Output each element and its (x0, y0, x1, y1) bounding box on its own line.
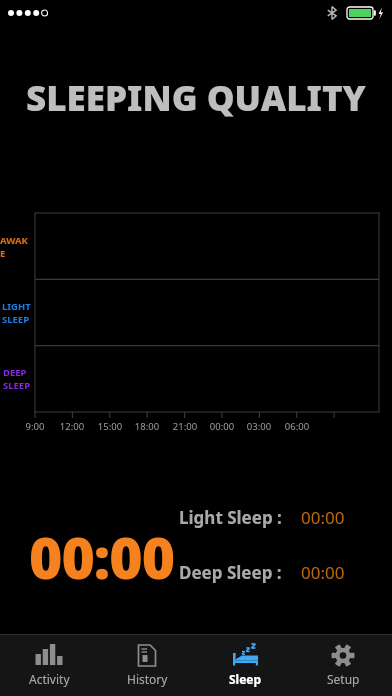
staticText: Activity (29, 671, 70, 687)
staticText: 00:00 (301, 561, 345, 584)
staticText: 18:00 (131, 420, 163, 433)
other: Setup (328, 643, 358, 668)
staticText: History (127, 671, 168, 687)
staticText: Setup (327, 671, 360, 687)
staticText: 21:00 (169, 420, 201, 433)
staticText: 03:00 (243, 420, 275, 433)
other: History (132, 643, 162, 668)
staticText: SLEEP (2, 313, 30, 326)
staticText: Sleep (229, 671, 262, 687)
button[interactable]: History (98, 635, 196, 696)
staticText: SLEEP (3, 379, 31, 392)
staticText: Deep Sleep : (179, 561, 282, 584)
staticText: 00:00 (206, 420, 238, 433)
button[interactable]: Sleep (196, 635, 294, 696)
button[interactable]: Setup (294, 635, 392, 696)
staticText: Light Sleep : (179, 506, 282, 529)
other: Activity (34, 643, 64, 668)
staticText: 00:00 (29, 518, 175, 596)
staticText: LIGHT (2, 300, 31, 313)
button[interactable]: Activity (0, 635, 98, 696)
staticText: 06:00 (281, 420, 313, 433)
staticText: DEEP (3, 366, 27, 379)
other: Sleep (228, 643, 262, 668)
staticText: 9:00 (19, 420, 51, 433)
staticText: 00:00 (301, 506, 345, 529)
staticText: AWAKE (0, 234, 33, 260)
staticText: 12:00 (56, 420, 88, 433)
staticText: 15:00 (94, 420, 126, 433)
staticText: SLEEPING QUALITY (26, 74, 366, 122)
